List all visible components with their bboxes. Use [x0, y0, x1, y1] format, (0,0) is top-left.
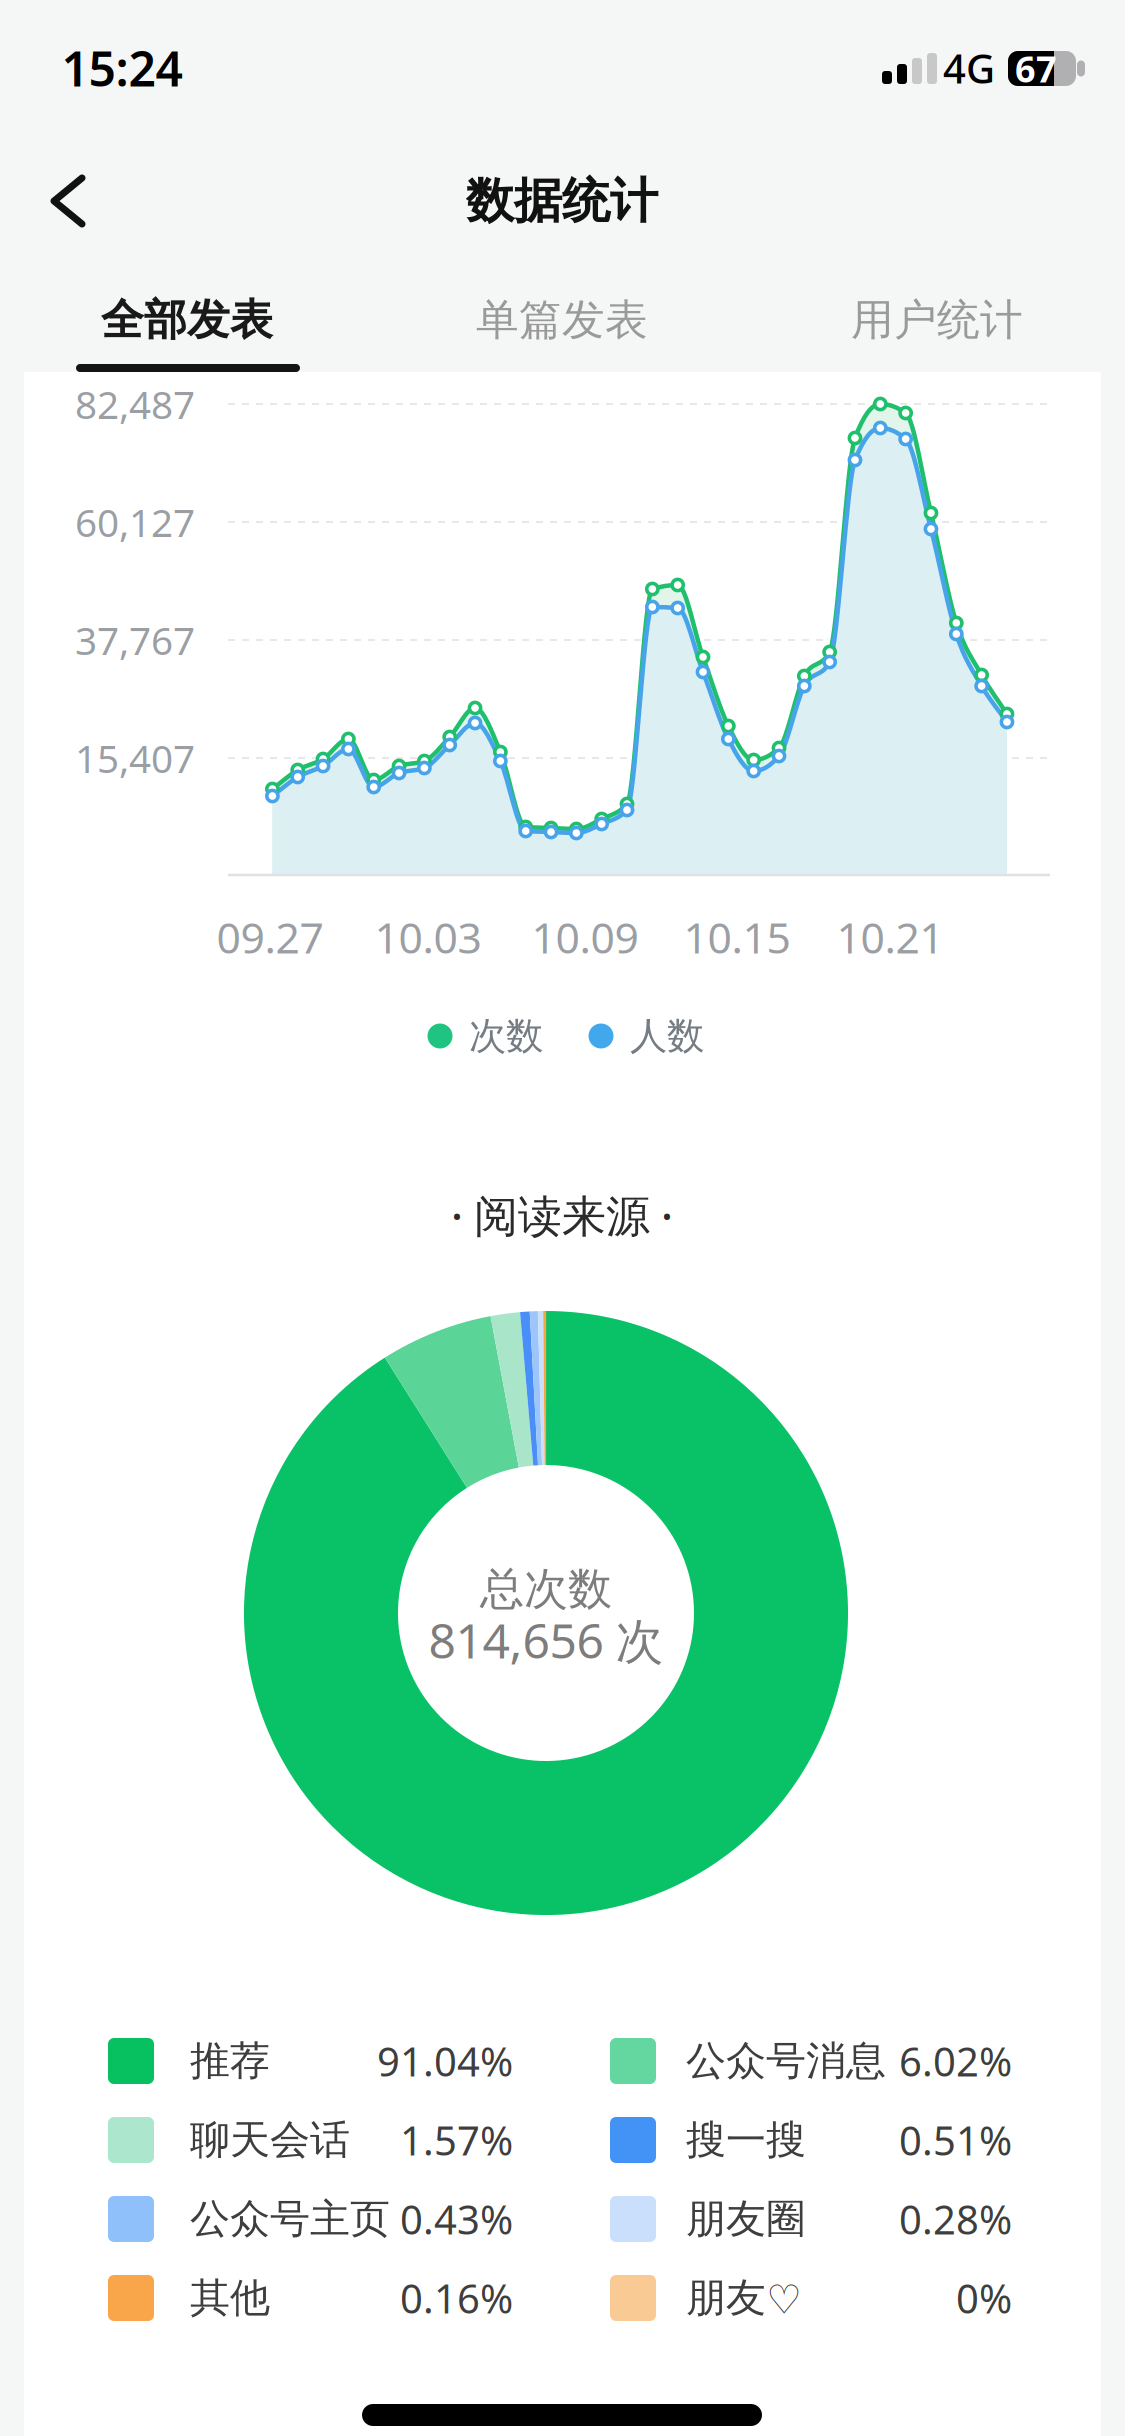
button[interactable]: 全部发表: [47, 275, 327, 365]
staticText: 推荐: [190, 2036, 270, 2085]
staticText: 单篇发表: [476, 294, 648, 346]
staticText: 朋友♡: [686, 2273, 802, 2322]
button[interactable]: 用户统计: [797, 275, 1077, 365]
staticText: 4G: [943, 41, 995, 94]
staticText: 10.03: [374, 909, 481, 965]
staticText: 0.43%: [400, 2192, 513, 2245]
staticText: 用户统计: [851, 294, 1023, 346]
staticText: 全部发表: [101, 294, 273, 346]
staticText: 91.04%: [377, 2034, 513, 2087]
staticText: 聊天会话: [190, 2115, 350, 2164]
staticText: · 阅读来源 ·: [451, 1186, 673, 1244]
staticText: 15:24: [61, 36, 182, 100]
staticText: 朋友圈: [686, 2194, 806, 2243]
staticText: 10.15: [683, 909, 790, 965]
staticText: 次数: [469, 1013, 543, 1059]
staticText: 814,656 次: [428, 1608, 663, 1672]
button[interactable]: [0, 158, 94, 244]
staticText: 6.02%: [899, 2034, 1012, 2087]
staticText: 公众号主页: [190, 2194, 390, 2243]
button[interactable]: 单篇发表: [422, 275, 702, 365]
staticText: 10.09: [531, 909, 638, 965]
staticText: 09.27: [216, 909, 323, 965]
staticText: 82,487: [75, 378, 195, 430]
staticText: 37,767: [75, 614, 195, 666]
staticText: 公众号消息: [686, 2036, 886, 2085]
staticText: 15,407: [75, 732, 195, 784]
staticText: 0%: [956, 2271, 1012, 2324]
staticText: 67: [1015, 45, 1057, 92]
staticText: 其他: [190, 2273, 270, 2322]
staticText: 人数: [630, 1013, 704, 1059]
staticText: 0.51%: [899, 2113, 1012, 2166]
staticText: 数据统计: [466, 171, 658, 230]
staticText: 0.28%: [899, 2192, 1012, 2245]
staticText: 1.57%: [400, 2113, 513, 2166]
staticText: 搜一搜: [686, 2115, 806, 2164]
staticText: 10.21: [836, 909, 943, 965]
staticText: 总次数: [480, 1562, 612, 1616]
staticText: 60,127: [75, 496, 195, 548]
staticText: 0.16%: [400, 2271, 513, 2324]
